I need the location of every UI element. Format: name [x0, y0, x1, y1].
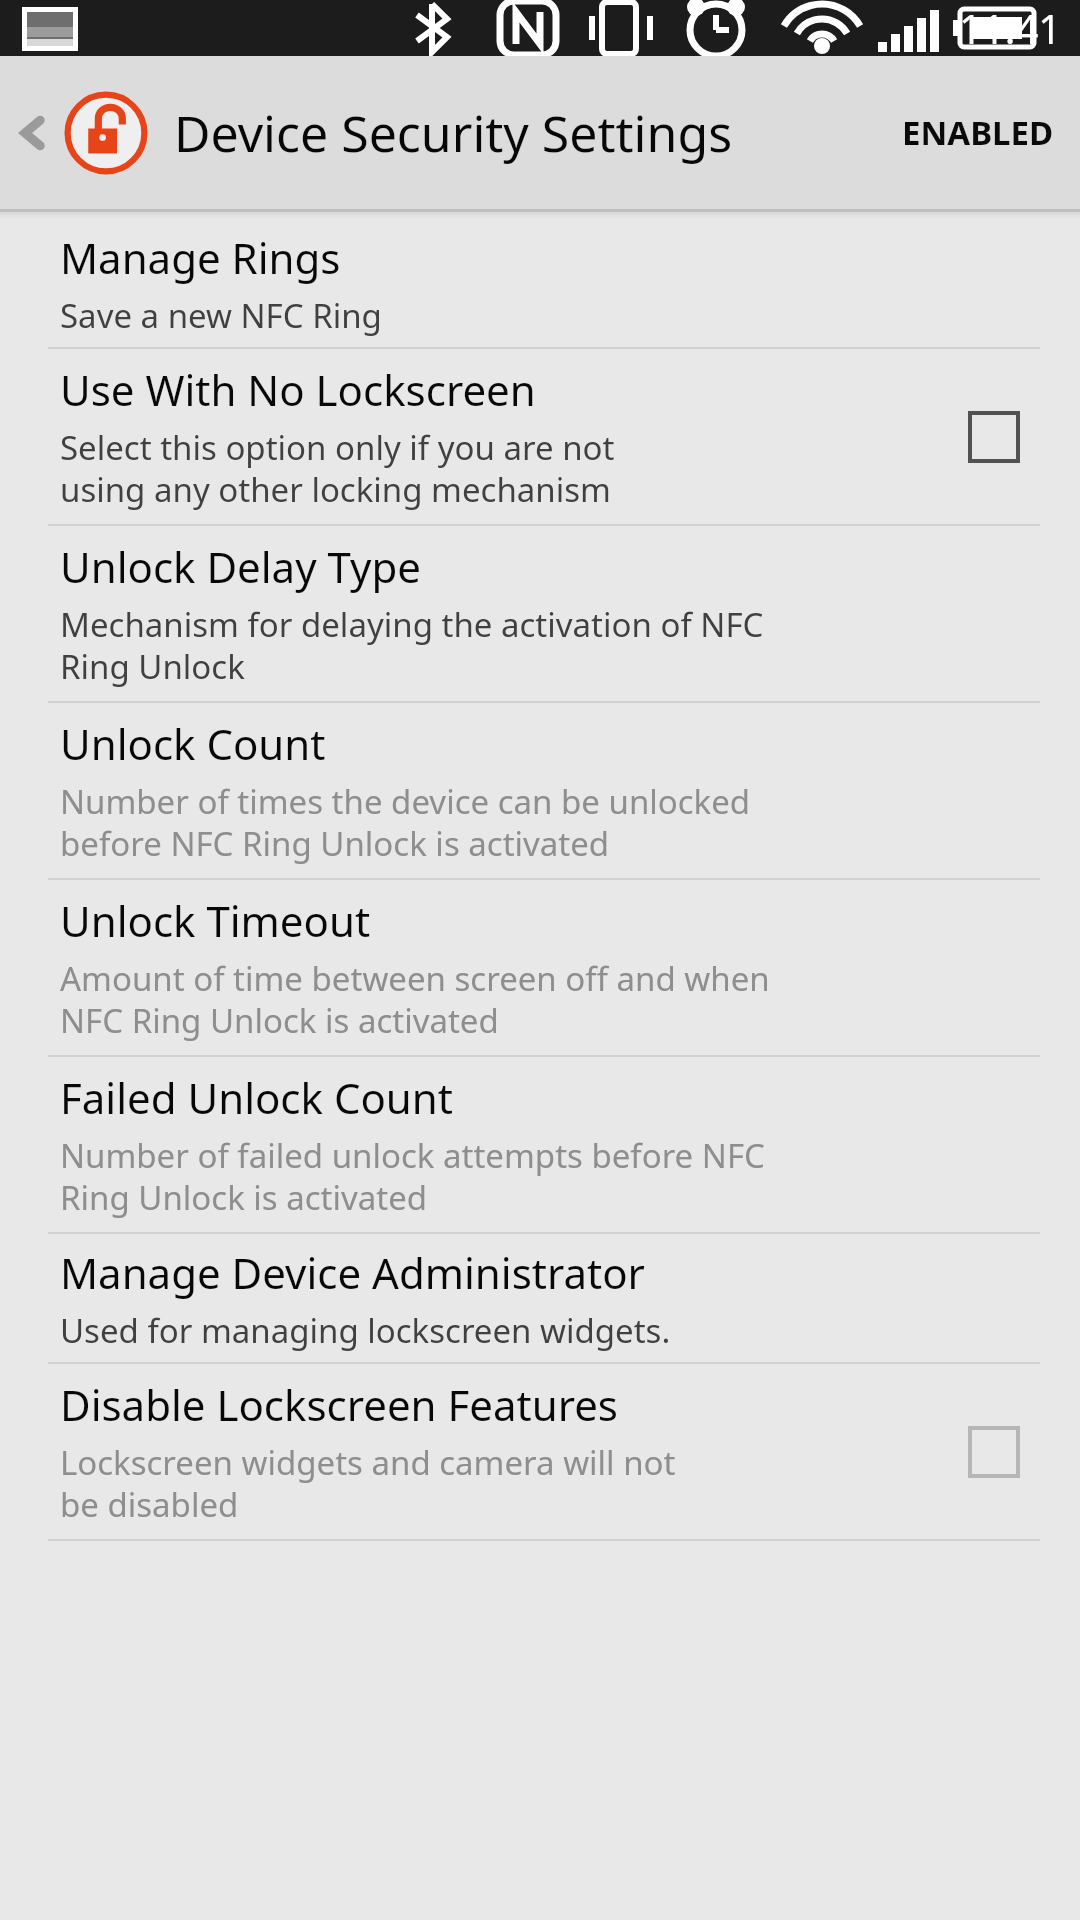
staticText: Device Security Settings	[174, 99, 733, 167]
staticText: Number of times the device can be unlock…	[60, 779, 751, 866]
staticText: Used for managing lockscreen widgets.	[60, 1308, 671, 1353]
button[interactable]: Unlock Delay Type	[0, 526, 1080, 701]
staticText: Amount of time between screen off and wh…	[60, 956, 770, 1043]
staticText: Manage Rings	[60, 229, 341, 286]
button[interactable]: Use With No Lockscreen	[0, 349, 1080, 524]
button[interactable]: Back	[12, 88, 54, 178]
staticText: Unlock Timeout	[60, 892, 371, 949]
staticText: 11:41	[959, 1, 1062, 55]
staticText: Failed Unlock Count	[60, 1069, 453, 1126]
button[interactable]: Disable Lockscreen Features	[948, 1406, 1040, 1498]
button[interactable]: Unlock Count	[0, 703, 1080, 878]
button[interactable]: Failed Unlock Count	[0, 1057, 1080, 1232]
button[interactable]: Manage Device Administrator	[0, 1234, 1080, 1362]
staticText: Manage Device Administrator	[60, 1244, 645, 1301]
staticText: Mechanism for delaying the activation of…	[60, 602, 764, 689]
staticText: ENABLED	[902, 110, 1054, 155]
button[interactable]: Disable Lockscreen Features	[0, 1364, 1080, 1539]
staticText: Select this option only if you are not u…	[60, 425, 615, 512]
button[interactable]: Unlock Timeout	[0, 880, 1080, 1055]
button[interactable]: ENABLED	[902, 110, 1054, 155]
staticText: Disable Lockscreen Features	[60, 1376, 618, 1433]
button[interactable]: Manage Rings	[0, 219, 1080, 347]
button[interactable]: Use With No Lockscreen	[948, 391, 1040, 483]
staticText: Lockscreen widgets and camera will not b…	[60, 1440, 676, 1527]
staticText: Unlock Delay Type	[60, 538, 421, 595]
staticText: Unlock Count	[60, 715, 326, 772]
staticText: Save a new NFC Ring	[60, 293, 382, 338]
staticText: Use With No Lockscreen	[60, 361, 536, 418]
staticText: Number of failed unlock attempts before …	[60, 1133, 765, 1220]
